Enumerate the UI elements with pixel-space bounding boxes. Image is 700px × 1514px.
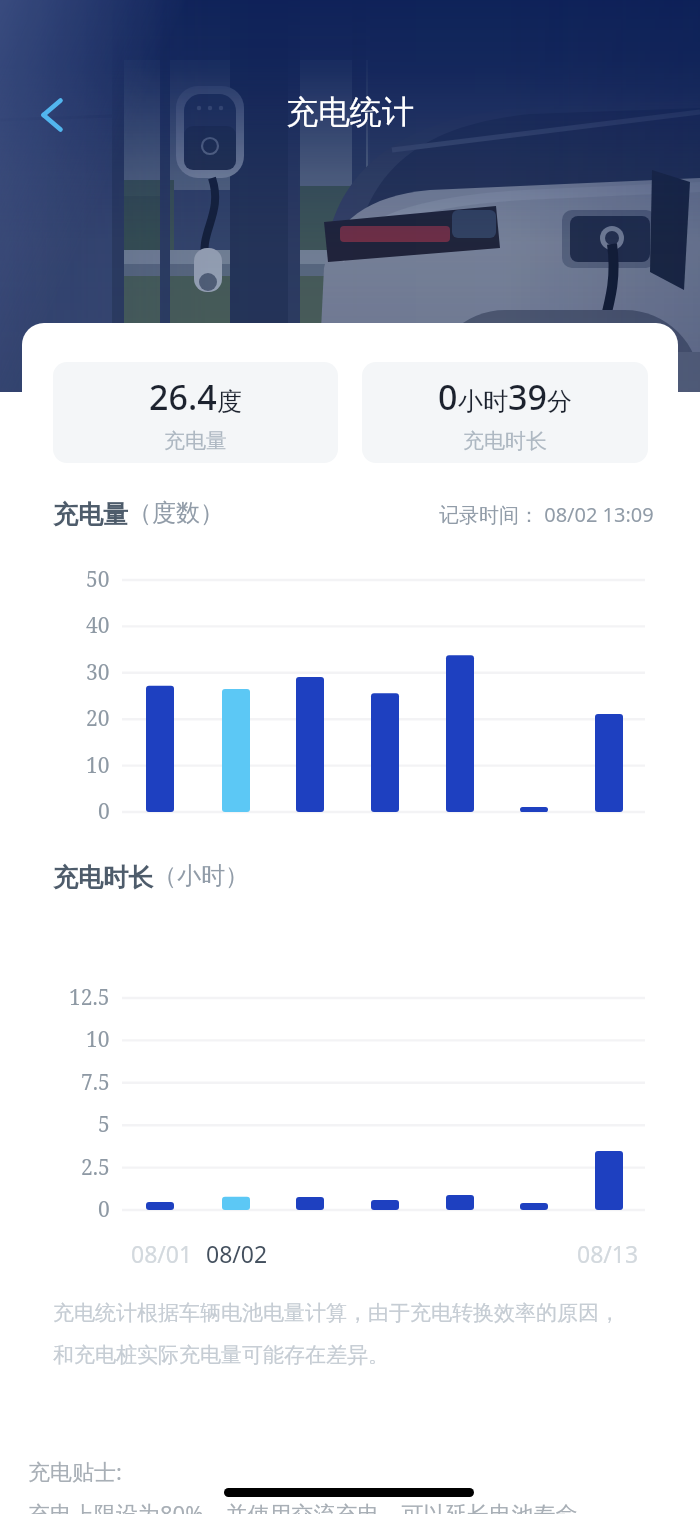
staticText: 0 [438,374,458,420]
staticText: 5 [98,1110,110,1139]
staticText: 度 [217,386,242,417]
staticText: 充电贴士: [28,1456,122,1486]
staticText: 7.5 [81,1068,110,1097]
staticText: 分 [547,386,572,417]
staticText: 0 [98,797,110,826]
staticText: 充电量 [53,499,128,530]
staticText: 30 [86,658,110,687]
staticText: 08/01 [131,1238,193,1269]
staticText: 39 [508,374,547,420]
button[interactable]: 0 [362,362,648,463]
staticText: （度数） [128,498,224,528]
staticText: 12.5 [69,983,110,1012]
staticText: 和充电桩实际充电量可能存在差异。 [53,1342,389,1368]
staticText: 2.5 [81,1153,110,1182]
staticText: 小时 [458,386,508,417]
staticText: 26.4 [149,374,217,420]
staticText: （小时） [153,861,249,891]
staticText: 40 [86,611,110,640]
button[interactable]: Back [22,85,82,145]
staticText: 充电时长 [53,862,153,893]
staticText: 充电统计 [286,92,414,132]
staticText: 充电统计根据车辆电池电量计算，由于充电转换效率的原因， [53,1300,620,1326]
staticText: 10 [86,751,110,780]
staticText: 08/13 [577,1238,639,1269]
staticText: 充电上限设为80%，并使用交流充电，可以延长电池寿命 [28,1498,578,1514]
staticText: 记录时间： 08/02 13:09 [439,501,654,528]
staticText: 充电时长 [463,428,547,454]
button[interactable]: 26.4 [53,362,338,463]
staticText: 10 [86,1025,110,1054]
staticText: 0 [98,1195,110,1224]
staticText: 50 [86,565,110,594]
staticText: 20 [86,704,110,733]
staticText: 充电量 [164,428,227,454]
staticText: 08/02 [206,1238,268,1269]
